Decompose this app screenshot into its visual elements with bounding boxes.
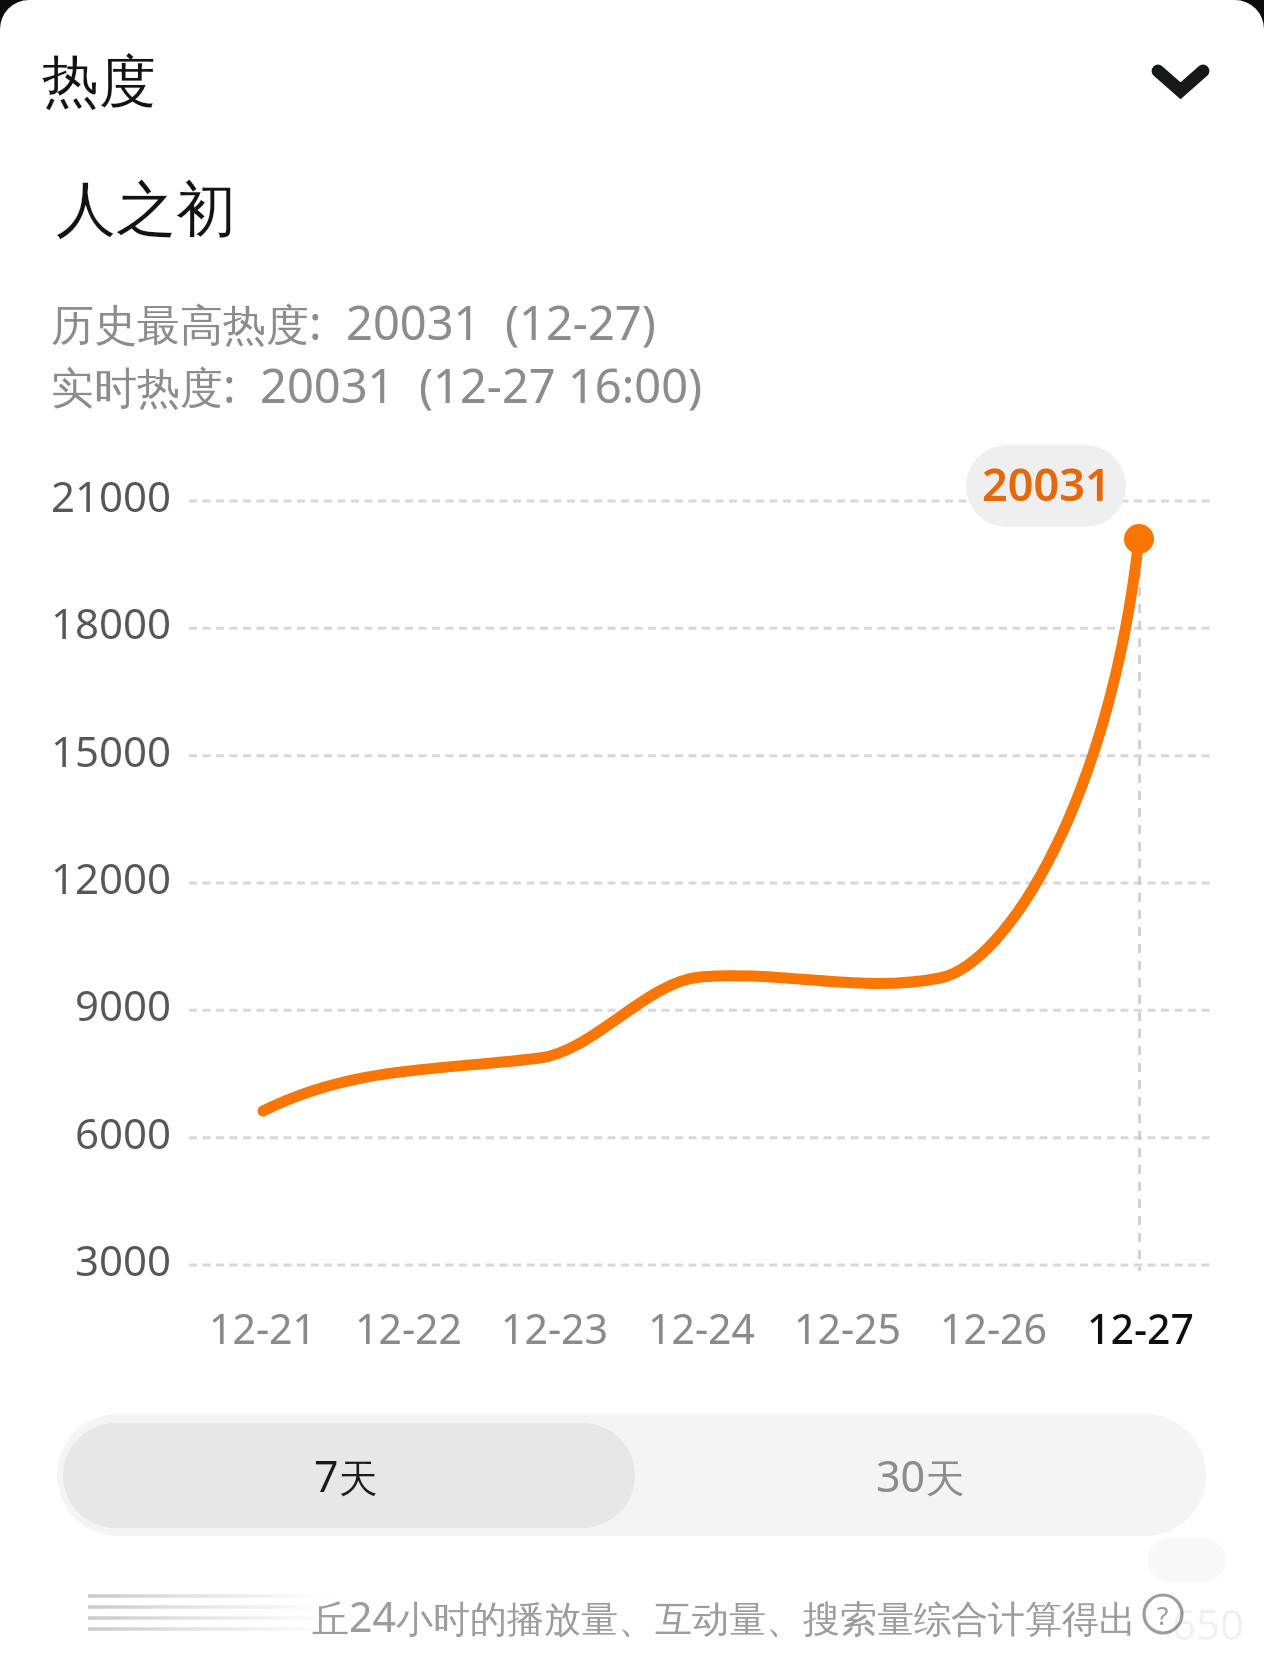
staticText: 12-23 [501,1300,609,1354]
staticText: 热度 [42,46,156,118]
staticText: 12-24 [648,1300,756,1354]
staticText: 12-21 [209,1300,317,1354]
staticText: 历史最高热度: 20031 (12-27) [51,290,656,354]
staticText: 9000 [75,976,172,1032]
staticText: 20031 [982,453,1111,514]
staticText: 650 [1172,1595,1245,1652]
button[interactable]: 热度 [22,32,182,132]
staticText: 18000 [51,594,172,650]
staticText: 丘24小时的播放量、互动量、搜索量综合计算得出 [312,1588,1136,1640]
button[interactable]: Collapse [1124,26,1234,136]
staticText: 6000 [75,1104,172,1160]
staticText: 12-26 [940,1300,1048,1354]
staticText: 21000 [51,467,172,523]
other: Help [1140,1591,1186,1637]
staticText: 7天 [314,1446,378,1505]
staticText: 实时热度: 20031 (12-27 16:00) [51,353,703,417]
staticText: 12-22 [355,1300,463,1354]
staticText: 12000 [51,849,172,905]
staticText: 3000 [75,1231,172,1287]
staticText: 15000 [51,722,172,778]
staticText: 12-27 [1087,1300,1194,1354]
staticText: ? [1157,1597,1169,1632]
button[interactable]: 30天 [635,1414,1206,1536]
staticText: 12-25 [794,1300,902,1354]
staticText: 30天 [876,1446,965,1505]
button[interactable]: 丘24小时的播放量、互动量、搜索量综合计算得出 [312,1588,1186,1640]
button[interactable]: 7天 [57,1414,635,1536]
staticText: 人之初 [56,172,236,248]
